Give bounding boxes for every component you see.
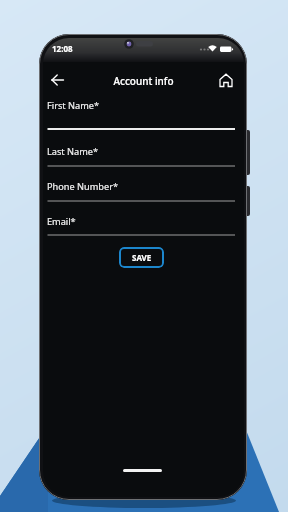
button[interactable] — [47, 69, 69, 91]
button[interactable]: First Name* — [47, 96, 239, 132]
button[interactable]: Last Name* — [47, 142, 239, 169]
button[interactable] — [214, 69, 238, 93]
staticText: Account info — [43, 74, 244, 88]
button[interactable]: Phone Number* — [47, 177, 239, 204]
button[interactable]: SAVE — [119, 247, 164, 268]
staticText: Last Name* — [47, 145, 99, 158]
staticText: First Name* — [47, 99, 100, 112]
button[interactable]: Email* — [47, 212, 239, 238]
staticText: Email* — [47, 215, 76, 228]
staticText: Phone Number* — [47, 180, 118, 193]
staticText: SAVE — [132, 252, 152, 263]
staticText: 12:08 — [52, 43, 73, 54]
